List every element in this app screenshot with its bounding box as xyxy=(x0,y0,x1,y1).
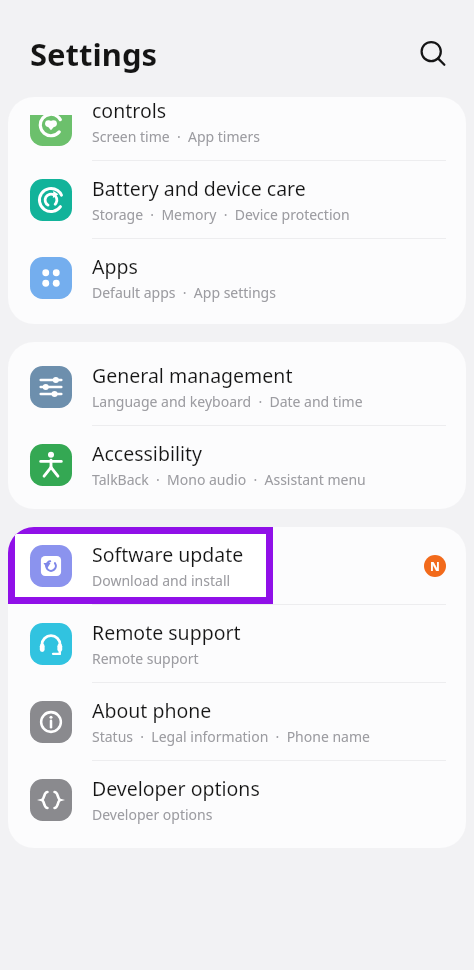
button[interactable]: Search xyxy=(412,33,454,75)
staticText: N xyxy=(430,558,440,574)
staticText: Screen time · App timers xyxy=(92,127,260,146)
staticText: Remote support xyxy=(92,619,241,646)
button[interactable]: About phone xyxy=(8,683,466,760)
staticText: Developer options xyxy=(92,775,260,802)
staticText: Language and keyboard · Date and time xyxy=(92,392,363,411)
staticText: Remote support xyxy=(92,649,199,668)
button[interactable]: controls xyxy=(8,97,466,160)
staticText: Software update xyxy=(92,541,244,568)
staticText: Accessibility xyxy=(92,440,202,467)
button[interactable]: General management xyxy=(8,348,466,425)
staticText: Settings xyxy=(30,33,158,75)
staticText: controls xyxy=(92,97,167,124)
staticText: Download and install xyxy=(92,571,231,590)
staticText: General management xyxy=(92,362,293,389)
button[interactable]: Battery and device care xyxy=(8,161,466,238)
staticText: Apps xyxy=(92,253,138,280)
button[interactable]: Developer options xyxy=(8,761,466,838)
staticText: About phone xyxy=(92,697,212,724)
button[interactable]: Apps xyxy=(8,239,466,316)
staticText: Storage · Memory · Device protection xyxy=(92,205,350,224)
button[interactable]: Accessibility xyxy=(8,426,466,503)
staticText: Status · Legal information · Phone name xyxy=(92,727,370,746)
button[interactable]: Software update xyxy=(8,527,466,604)
staticText: TalkBack · Mono audio · Assistant menu xyxy=(92,470,366,489)
staticText: Developer options xyxy=(92,805,213,824)
button[interactable]: Remote support xyxy=(8,605,466,682)
staticText: Battery and device care xyxy=(92,175,306,202)
staticText: Default apps · App settings xyxy=(92,283,276,302)
